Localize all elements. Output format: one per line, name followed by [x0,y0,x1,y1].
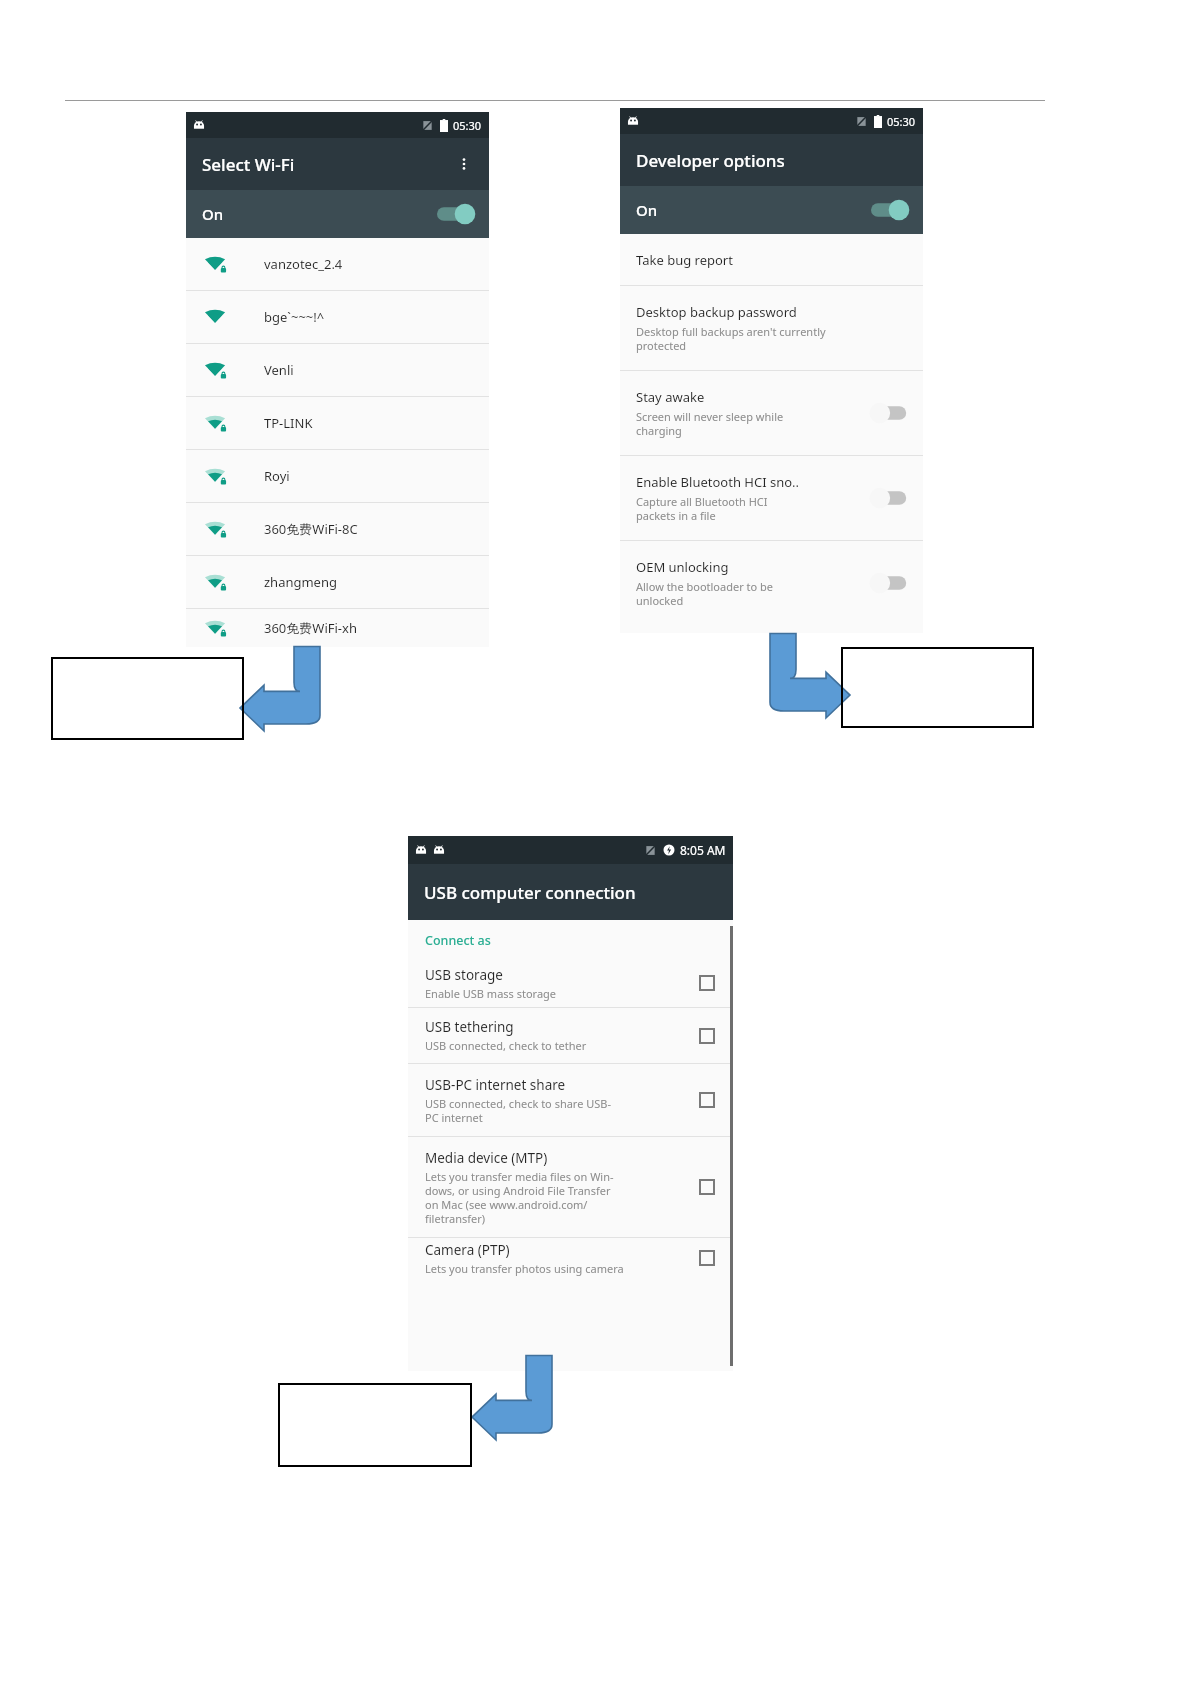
button[interactable]: zhangmeng [186,556,489,608]
staticText: Media device (MTP) [425,1149,548,1167]
button[interactable]: USB-PC internet share [408,1064,733,1136]
button[interactable]: Off toggle [871,487,911,509]
staticText: vanzotec_2.4 [264,255,343,273]
staticText: Enable Bluetooth HCI sno.. [636,473,800,491]
button[interactable]: OEM unlocking [620,541,923,625]
staticText: Royi [264,467,290,485]
button[interactable]: On [620,186,923,234]
button[interactable]: Royi [186,450,489,502]
button[interactable]: Stay awake [620,371,923,455]
button[interactable]: 360免费WiFi-8C [186,503,489,555]
button[interactable]: Off toggle [871,572,911,594]
staticText: Desktop full backups aren't currently pr… [636,324,826,353]
button[interactable]: USB storage checkbox [699,975,715,991]
staticText: 05:30 [453,118,482,133]
button[interactable]: On toggle [867,199,907,221]
button[interactable]: USB storage [408,959,733,1007]
staticText: USB connected, check to share USB- PC in… [425,1096,612,1125]
button[interactable]: Venli [186,344,489,396]
staticText: Enable USB mass storage [425,986,557,1001]
button[interactable]: On [186,190,489,238]
staticText: Connect as [425,932,491,949]
staticText: USB-PC internet share [425,1076,566,1094]
staticText: USB storage [425,966,503,984]
button[interactable]: Off toggle [871,402,911,424]
button[interactable]: Media device (MTP) [408,1137,733,1237]
staticText: OEM unlocking [636,558,729,576]
staticText: 360免费WiFi-xh [264,619,357,637]
button[interactable]: Enable Bluetooth HCI sno.. [620,456,923,540]
staticText: Lets you transfer photos using camera [425,1261,624,1276]
staticText: Camera (PTP) [425,1241,510,1259]
staticText: USB connected, check to tether [425,1038,587,1053]
button[interactable]: TP-LINK [186,397,489,449]
staticText: Capture all Bluetooth HCI packets in a f… [636,494,768,523]
button[interactable]: Camera (PTP) [408,1238,733,1278]
button[interactable]: Desktop backup password [620,286,923,370]
button[interactable]: More options [449,149,479,179]
staticText: 360免费WiFi-8C [264,520,358,538]
staticText: 05:30 [887,114,916,129]
staticText: Stay awake [636,388,705,406]
button[interactable]: vanzotec_2.4 [186,238,489,290]
button[interactable]: USB tethering [408,1008,733,1063]
button[interactable]: bge`~~~!^ [186,291,489,343]
button[interactable]: Camera (PTP) checkbox [699,1250,715,1266]
staticText: USB computer connection [424,881,636,904]
staticText: Lets you transfer media files on Win- do… [425,1169,614,1226]
staticText: On [636,200,658,220]
button[interactable]: 360免费WiFi-xh [186,609,489,647]
button[interactable]: On toggle [433,203,473,225]
staticText: 8:05 AM [680,842,726,858]
staticText: bge`~~~!^ [264,308,325,326]
staticText: Desktop backup password [636,303,797,321]
button[interactable]: USB tethering checkbox [699,1028,715,1044]
staticText: zhangmeng [264,573,337,591]
staticText: Developer options [636,149,785,172]
staticText: On [202,204,224,224]
staticText: USB tethering [425,1018,514,1036]
button[interactable]: USB-PC internet share checkbox [699,1092,715,1108]
button[interactable]: Media device (MTP) checkbox [699,1179,715,1195]
staticText: Venli [264,361,294,379]
staticText: Screen will never sleep while charging [636,409,784,438]
staticText: Select Wi-Fi [202,153,295,176]
staticText: TP-LINK [264,414,313,432]
staticText: Allow the bootloader to be unlocked [636,579,774,608]
button[interactable]: Take bug report [620,234,923,285]
staticText: Take bug report [636,251,733,269]
